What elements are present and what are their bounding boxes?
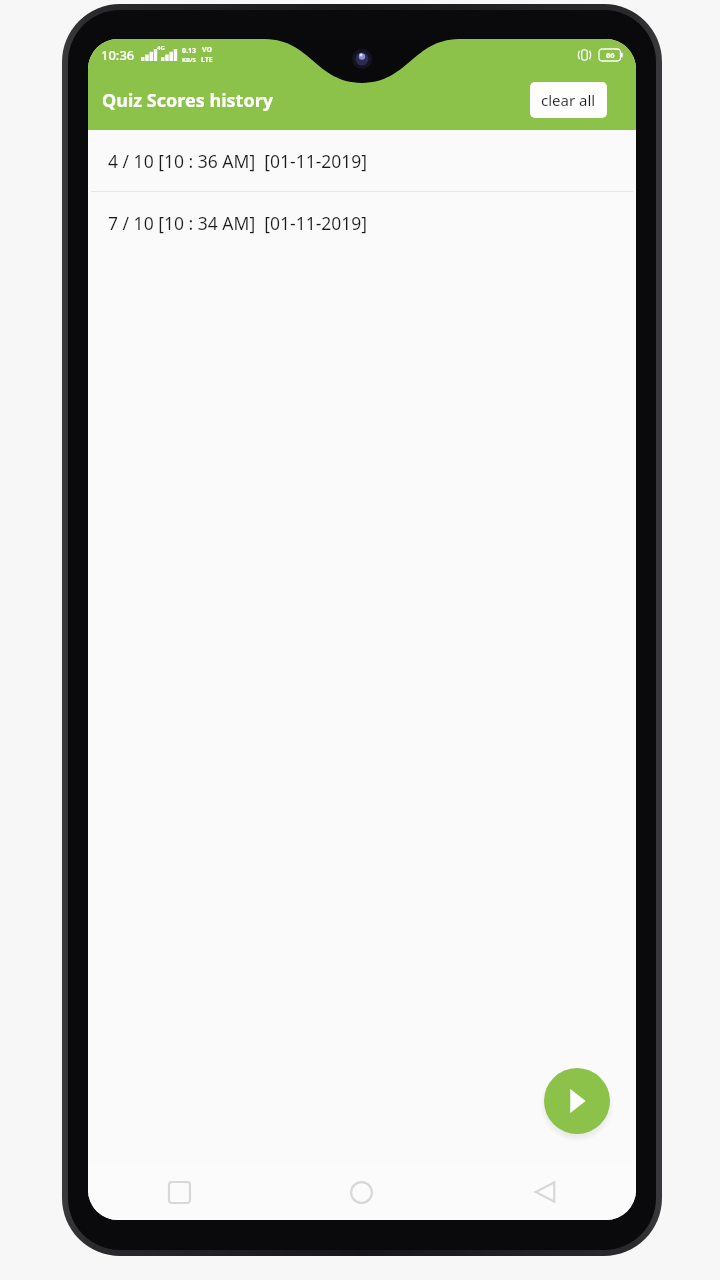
staticText: 66 [606,50,615,60]
staticText: LTE [201,55,213,65]
staticText: 4 / 10 [10 : 36 AM] [01-11-2019] [108,149,368,173]
button[interactable]: clear all [530,82,607,118]
button[interactable]: Back [453,1164,636,1220]
staticText: KB/S [182,56,196,64]
button[interactable]: Home [270,1164,453,1220]
staticText: clear all [541,90,596,110]
staticText: 10:36 [101,46,135,64]
staticText: 4G [157,44,165,52]
staticText: 0.13 [182,46,196,56]
staticText: VO [202,45,213,55]
button[interactable]: Recent apps [88,1164,270,1220]
button[interactable]: 7 / 10 [10 : 34 AM] [01-11-2019] [88,192,636,253]
button[interactable]: Start quiz [544,1068,610,1134]
staticText: 7 / 10 [10 : 34 AM] [01-11-2019] [108,211,368,235]
button[interactable]: 4 / 10 [10 : 36 AM] [01-11-2019] [88,130,636,191]
staticText: Quiz Scores history [102,88,273,113]
